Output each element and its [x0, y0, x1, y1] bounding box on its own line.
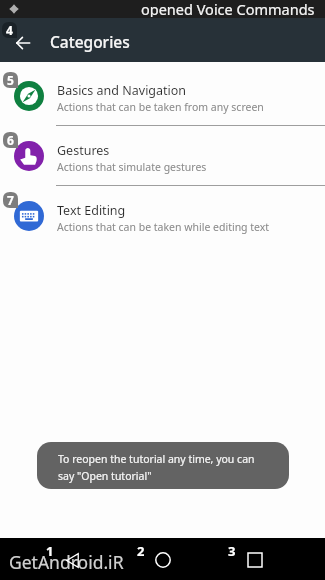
button[interactable]: Back [58, 546, 86, 574]
button[interactable]: To reopen the tutorial any time, you can… [37, 442, 289, 489]
staticText: 2 [137, 542, 145, 560]
staticText: Basics and Navigation [57, 82, 187, 99]
staticText: 3 [228, 542, 236, 560]
staticText: Text Editing [57, 202, 126, 219]
staticText: 1 [46, 542, 54, 560]
staticText: Categories [50, 31, 130, 52]
button[interactable]: Navigate up [8, 28, 38, 58]
button[interactable]: Text Editing [0, 186, 325, 245]
staticText: 7 [7, 192, 14, 208]
button[interactable]: Basics and Navigation [0, 66, 325, 125]
button[interactable]: Gestures [0, 126, 325, 185]
staticText: Gestures [57, 142, 110, 159]
staticText: To reopen the tutorial any time, you can… [58, 452, 255, 483]
staticText: opened Voice Commands [141, 0, 315, 17]
button[interactable]: Recent apps [241, 546, 269, 574]
staticText: Actions that can be taken from any scree… [57, 100, 264, 114]
staticText: 5 [7, 72, 14, 88]
button[interactable]: Home [149, 546, 177, 574]
staticText: Actions that simulate gestures [57, 160, 207, 174]
staticText: 4 [6, 22, 13, 38]
staticText: Actions that can be taken while editing … [57, 220, 270, 234]
staticText: 6 [7, 132, 14, 148]
staticText: GetAndroid.iR [9, 550, 124, 574]
